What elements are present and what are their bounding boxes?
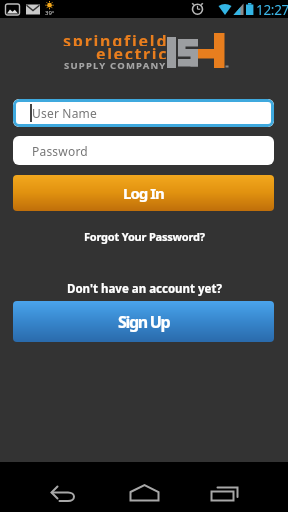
staticText: springfield <box>63 30 169 46</box>
button[interactable] <box>0 462 96 512</box>
staticText: Don't have an account yet? <box>67 281 222 297</box>
staticText: electric <box>96 43 169 59</box>
button[interactable]: Sign Up <box>13 301 274 342</box>
staticText: User Name <box>32 105 98 121</box>
staticText: Sign Up <box>118 311 170 333</box>
staticText: 39° <box>45 9 55 17</box>
staticText: Password <box>32 143 88 159</box>
button[interactable]: Log In <box>13 175 274 211</box>
staticText: Forgot Your Password? <box>84 229 205 244</box>
button[interactable] <box>96 462 192 512</box>
staticText: Log In <box>123 183 164 203</box>
staticText: SUPPLY COMPANY <box>64 59 167 71</box>
button[interactable] <box>192 462 288 512</box>
button[interactable]: Forgot Your Password? <box>0 227 288 245</box>
button[interactable]: User Name <box>13 99 274 127</box>
staticText: 12:27 <box>256 1 288 19</box>
button[interactable]: Password <box>13 136 274 165</box>
